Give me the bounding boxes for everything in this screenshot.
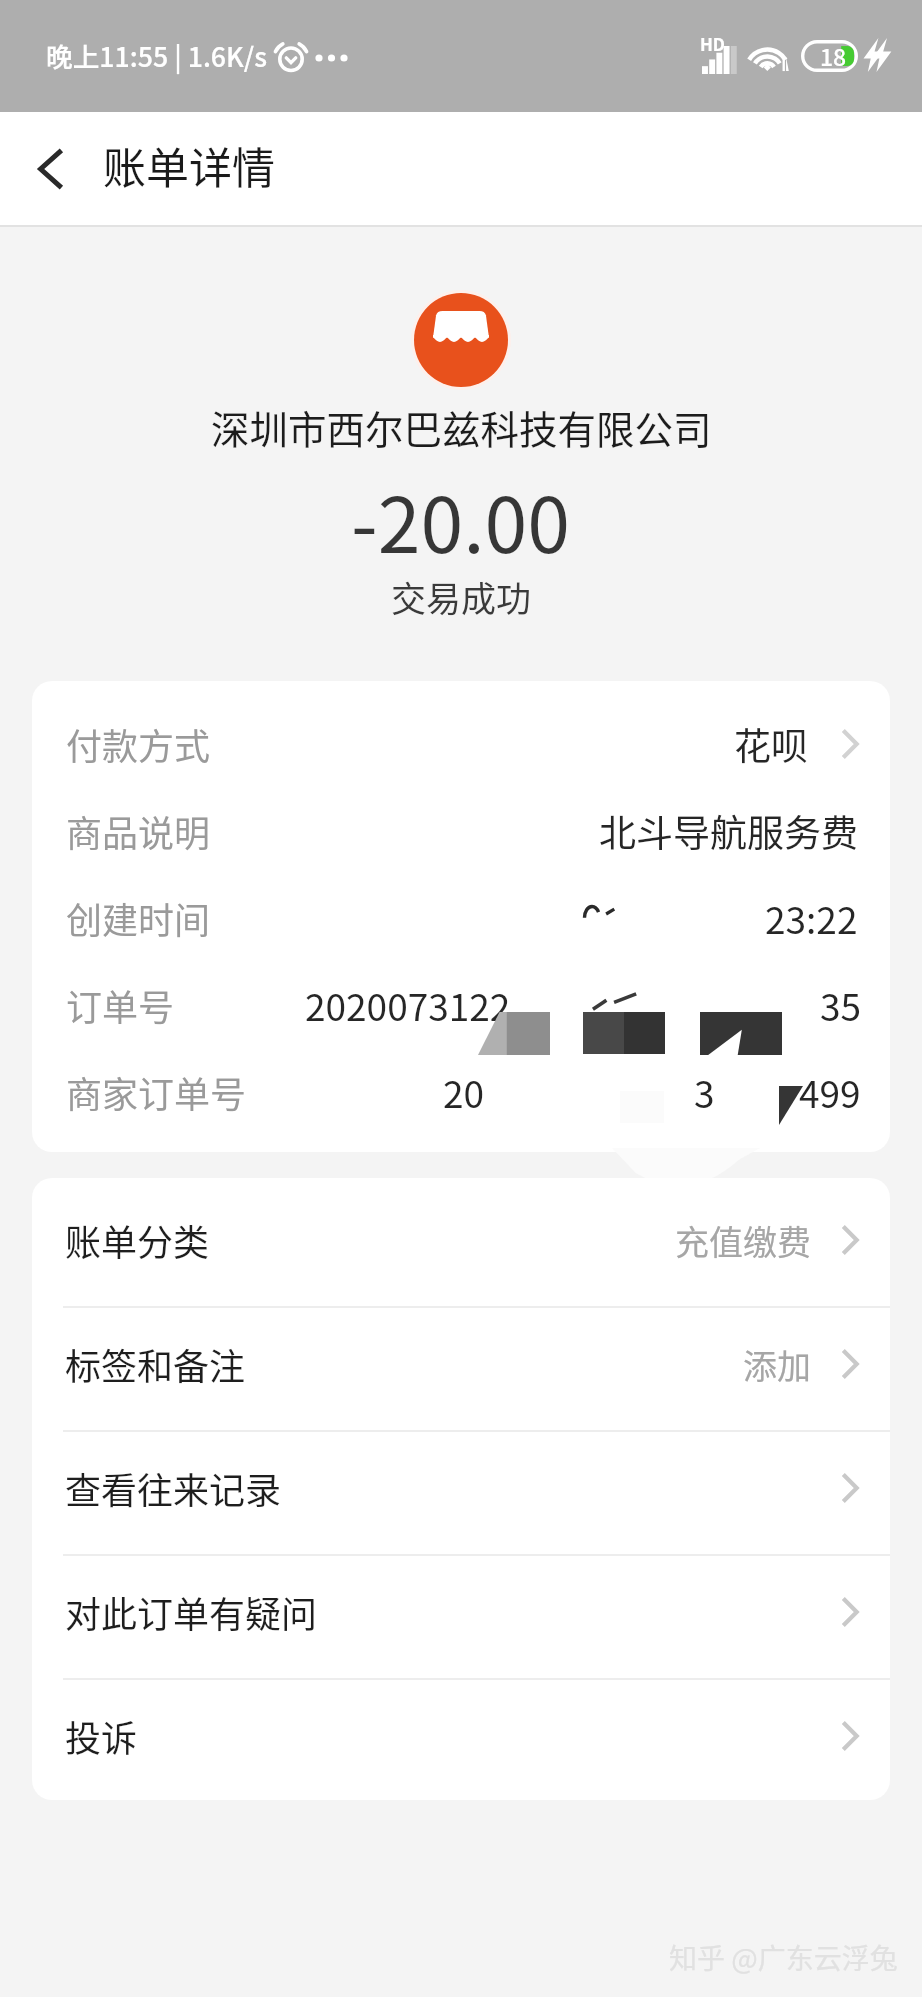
staticText: 查看往来记录 [65, 1462, 282, 1514]
button[interactable]: 账单分类 [32, 1178, 890, 1302]
staticText: 商家订单号 [66, 1066, 247, 1118]
button[interactable]: 对此订单有疑问 [32, 1550, 890, 1674]
staticText: 添加 [743, 1340, 811, 1389]
staticText: 499 [799, 1065, 861, 1119]
staticText: 账单详情 [103, 134, 275, 196]
staticText: 花呗 [734, 717, 808, 771]
staticText: 充值缴费 [675, 1216, 811, 1265]
staticText: -20.00 [351, 464, 571, 575]
staticText: 23:22 [765, 891, 858, 945]
staticText: 知乎 @广东云浮兔 [669, 1937, 898, 1978]
staticText: 晚上11:55 | 1.6K/s [46, 36, 267, 75]
staticText: 20 [443, 1065, 485, 1119]
staticText: 标签和备注 [65, 1338, 246, 1390]
staticText: 商品说明 [66, 805, 211, 857]
button[interactable]: 标签和备注 [32, 1302, 890, 1426]
button[interactable]: 投诉 [32, 1674, 890, 1798]
staticText: 付款方式 [66, 718, 211, 770]
staticText: 订单号 [66, 979, 175, 1031]
button[interactable]: 付款方式 [32, 700, 890, 787]
staticText: 深圳市西尔巴兹科技有限公司 [211, 399, 712, 455]
button[interactable]: Back [4, 123, 96, 215]
staticText: 投诉 [65, 1710, 138, 1762]
staticText: HD [700, 31, 726, 56]
button[interactable]: 查看往来记录 [32, 1426, 890, 1550]
staticText: 2020073122 [305, 978, 511, 1032]
staticText: 18 [820, 39, 847, 72]
staticText: 北斗导航服务费 [599, 804, 858, 858]
staticText: 创建时间 [66, 892, 211, 944]
staticText: 对此订单有疑问 [65, 1586, 318, 1638]
staticText: 3 [694, 1065, 715, 1119]
staticText: 账单分类 [65, 1214, 210, 1266]
staticText: 35 [820, 978, 862, 1032]
staticText: 交易成功 [391, 571, 532, 622]
